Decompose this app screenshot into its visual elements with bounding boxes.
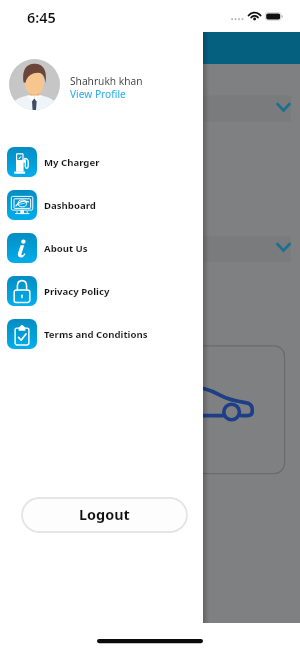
button[interactable]: About Us bbox=[0, 233, 203, 263]
button[interactable]: Terms and Conditions bbox=[0, 319, 203, 349]
button[interactable]: Shahrukh khan bbox=[0, 59, 203, 110]
button[interactable]: Select charger bbox=[203, 96, 291, 122]
button[interactable]: Dashboard bbox=[0, 190, 203, 220]
button[interactable]: Logout bbox=[21, 497, 188, 533]
button[interactable]: Select vehicle bbox=[203, 236, 291, 262]
staticText: 6:45 bbox=[27, 8, 56, 28]
button[interactable]: Privacy Policy bbox=[0, 276, 203, 306]
staticText: View Profile bbox=[70, 87, 126, 101]
staticText: My Charger bbox=[44, 156, 100, 169]
staticText: Shahrukh khan bbox=[70, 74, 143, 88]
staticText: Terms and Conditions bbox=[44, 328, 148, 341]
staticText: Logout bbox=[79, 505, 130, 525]
staticText: Privacy Policy bbox=[44, 285, 110, 298]
staticText: Dashboard bbox=[44, 199, 96, 212]
button[interactable]: Close navigation drawer bbox=[203, 32, 300, 623]
button[interactable]: My Charger bbox=[0, 147, 203, 177]
staticText: About Us bbox=[44, 242, 88, 255]
